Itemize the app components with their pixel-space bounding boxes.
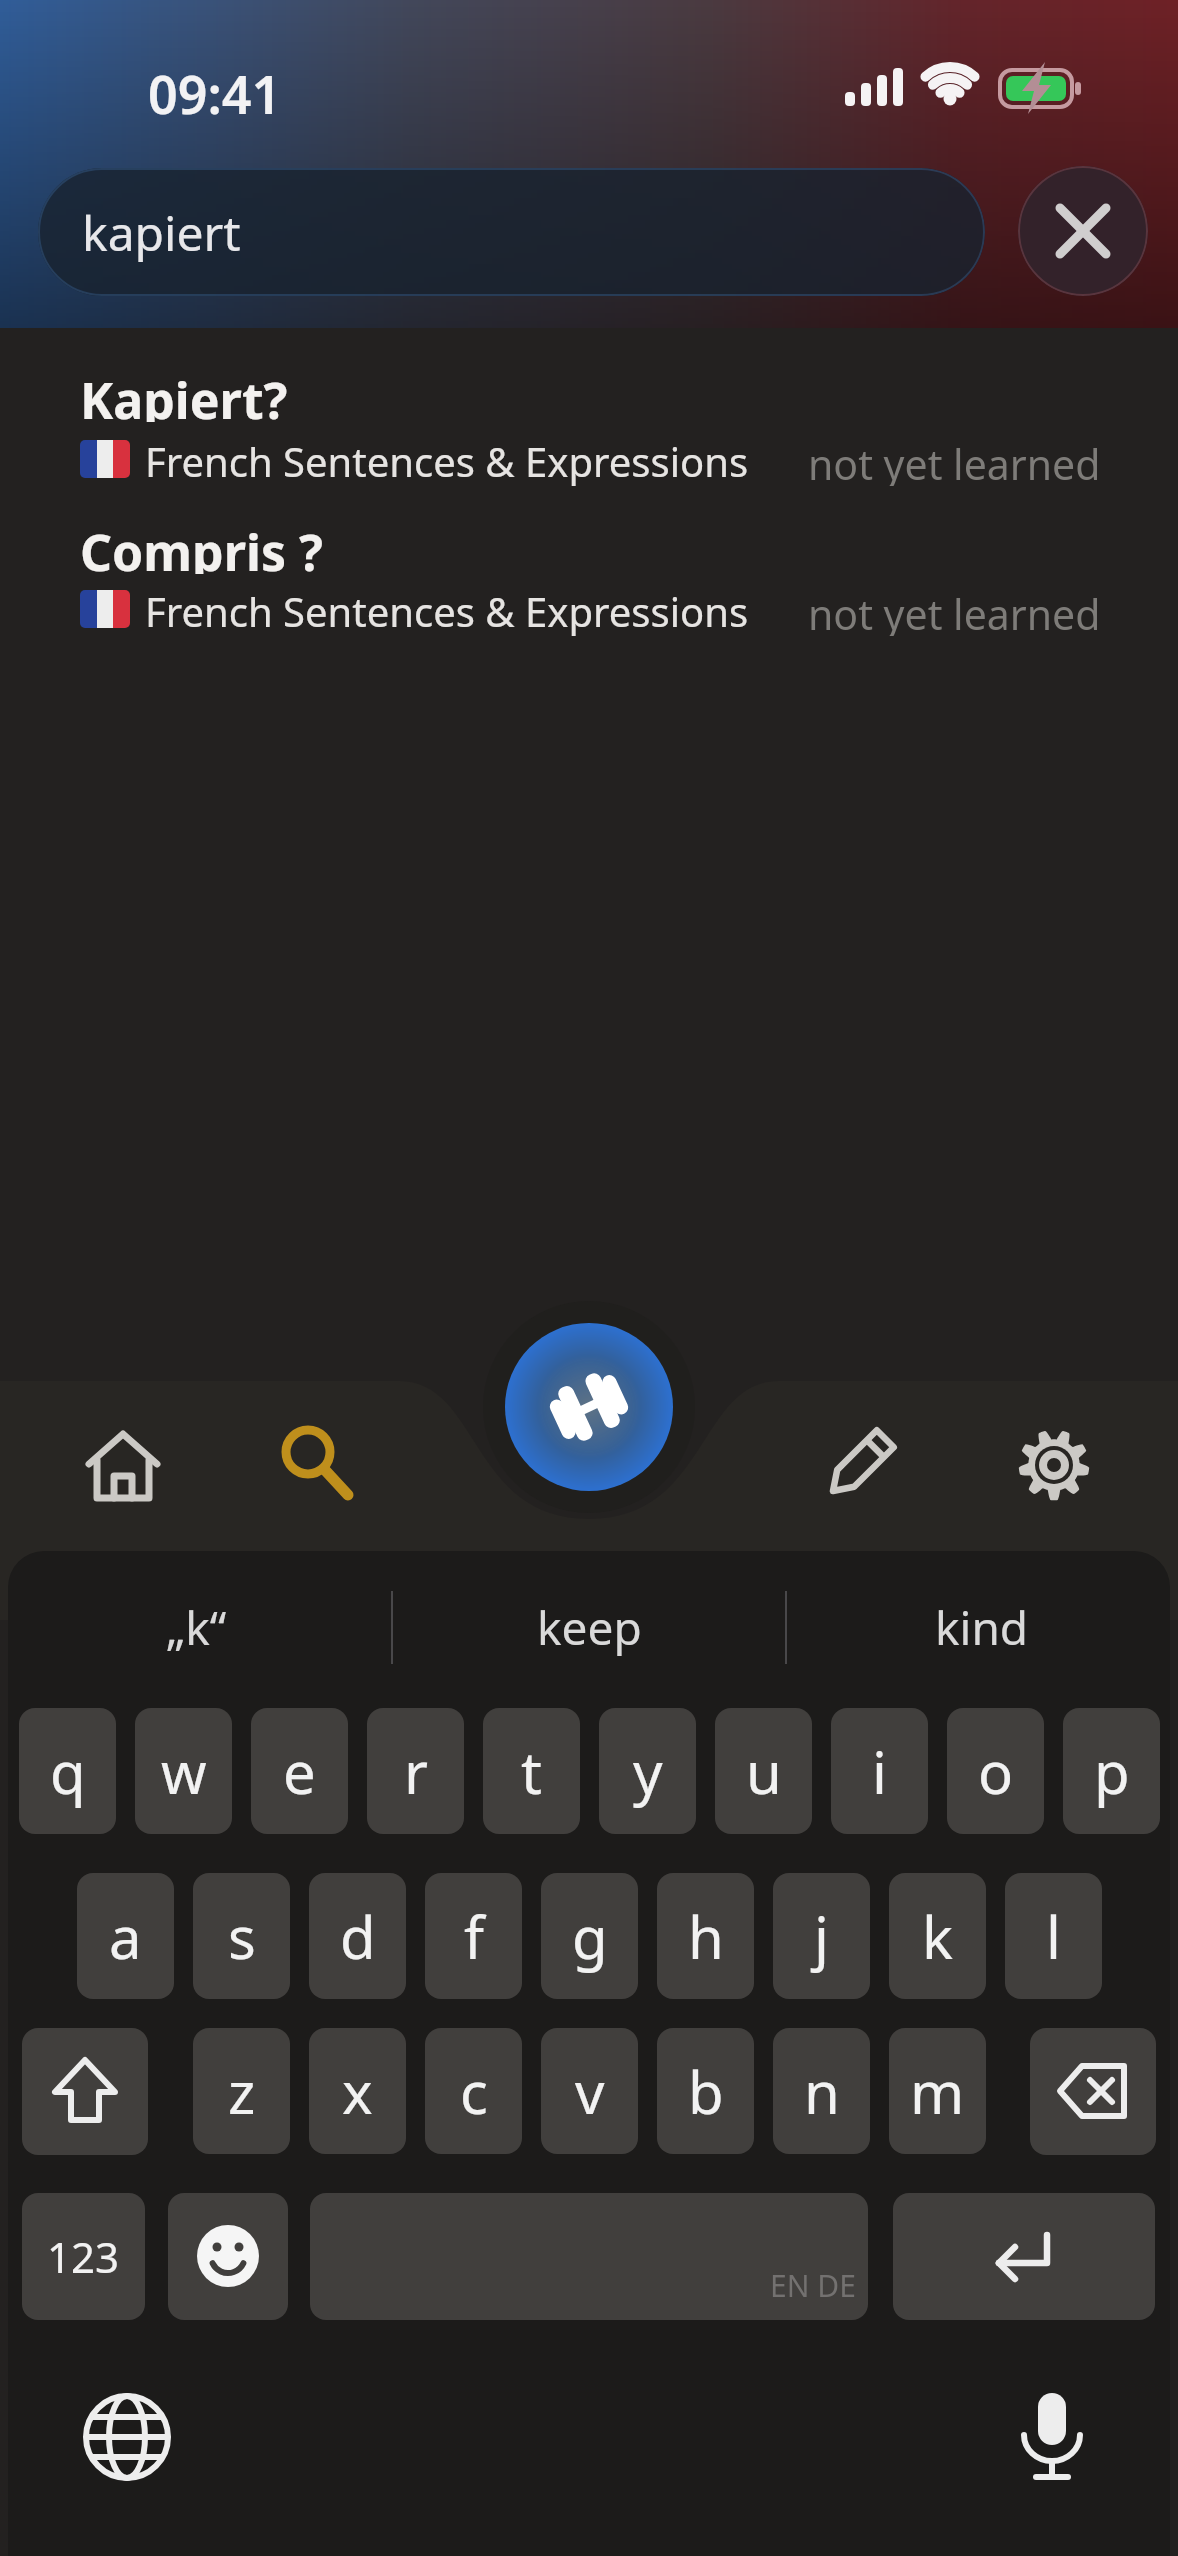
staticText: keep <box>537 1596 642 1659</box>
button[interactable]: l <box>1005 1873 1102 1999</box>
staticText: f <box>464 1897 484 1976</box>
button[interactable]: u <box>715 1708 812 1834</box>
staticText: 123 <box>47 2228 120 2285</box>
staticText: q <box>50 1732 86 1811</box>
button[interactable] <box>75 1420 171 1516</box>
staticText: kind <box>935 1596 1029 1659</box>
button[interactable]: f <box>425 1873 522 1999</box>
button[interactable] <box>809 1419 905 1515</box>
staticText: v <box>575 2052 605 2131</box>
button[interactable]: n <box>773 2028 870 2154</box>
staticText: l <box>1046 1897 1061 1976</box>
staticText: k <box>922 1897 953 1976</box>
staticText: not yet learned <box>808 586 1101 636</box>
button[interactable] <box>75 2385 179 2489</box>
button[interactable]: a <box>77 1873 174 1999</box>
button[interactable]: x <box>309 2028 406 2154</box>
button[interactable]: „k“ <box>0 1592 392 1662</box>
staticText: French Sentences & Expressions <box>145 434 749 486</box>
button[interactable]: c <box>425 2028 522 2154</box>
button[interactable] <box>0 345 1178 495</box>
staticText: kapiert <box>82 200 241 265</box>
button[interactable]: i <box>831 1708 928 1834</box>
staticText: not yet learned <box>808 436 1101 486</box>
button[interactable] <box>1030 2028 1156 2155</box>
staticText: m <box>910 2052 965 2131</box>
button[interactable]: z <box>193 2028 290 2154</box>
button[interactable]: 123 <box>22 2193 145 2320</box>
staticText: o <box>978 1732 1014 1811</box>
staticText: w <box>161 1732 207 1811</box>
staticText: b <box>688 2052 724 2131</box>
staticText: a <box>109 1897 142 1976</box>
staticText: EN DE <box>770 2265 856 2306</box>
staticText: 09:41 <box>148 58 282 116</box>
button[interactable] <box>893 2193 1155 2320</box>
button[interactable]: s <box>193 1873 290 1999</box>
staticText: s <box>228 1897 256 1976</box>
staticText: z <box>228 2052 256 2131</box>
button[interactable]: p <box>1063 1708 1160 1834</box>
button[interactable]: keep <box>393 1592 785 1662</box>
staticText: x <box>342 2052 373 2131</box>
button[interactable] <box>1006 1417 1102 1513</box>
staticText: i <box>872 1732 887 1811</box>
button[interactable]: kind <box>786 1592 1178 1662</box>
staticText: g <box>572 1897 608 1976</box>
staticText: u <box>746 1732 782 1811</box>
staticText: Kapiert? <box>80 366 288 422</box>
button[interactable] <box>22 2028 148 2155</box>
button[interactable]: v <box>541 2028 638 2154</box>
button[interactable] <box>310 2193 868 2320</box>
button[interactable]: y <box>599 1708 696 1834</box>
staticText: n <box>804 2052 840 2131</box>
button[interactable]: m <box>889 2028 986 2154</box>
staticText: e <box>283 1732 316 1811</box>
button[interactable] <box>505 1323 673 1491</box>
staticText: French Sentences & Expressions <box>145 584 749 636</box>
staticText: p <box>1094 1732 1130 1811</box>
button[interactable]: k <box>889 1873 986 1999</box>
staticText: c <box>460 2052 488 2131</box>
button[interactable]: o <box>947 1708 1044 1834</box>
button[interactable]: kapiert <box>38 168 985 296</box>
button[interactable]: h <box>657 1873 754 1999</box>
staticText: y <box>633 1732 663 1811</box>
staticText: „k“ <box>166 1596 227 1659</box>
staticText: Compris ? <box>80 518 323 574</box>
button[interactable]: q <box>19 1708 116 1834</box>
staticText: t <box>521 1732 542 1811</box>
button[interactable] <box>1000 2385 1104 2489</box>
staticText: d <box>340 1897 376 1976</box>
button[interactable]: b <box>657 2028 754 2154</box>
button[interactable] <box>168 2193 288 2320</box>
staticText: h <box>688 1897 724 1976</box>
staticText: r <box>404 1732 428 1811</box>
button[interactable]: e <box>251 1708 348 1834</box>
button[interactable]: j <box>773 1873 870 1999</box>
staticText: j <box>814 1897 829 1976</box>
button[interactable] <box>0 500 1178 650</box>
button[interactable]: g <box>541 1873 638 1999</box>
button[interactable] <box>1018 166 1148 296</box>
button[interactable]: d <box>309 1873 406 1999</box>
button[interactable]: t <box>483 1708 580 1834</box>
button[interactable]: w <box>135 1708 232 1834</box>
button[interactable] <box>265 1409 361 1505</box>
button[interactable]: r <box>367 1708 464 1834</box>
